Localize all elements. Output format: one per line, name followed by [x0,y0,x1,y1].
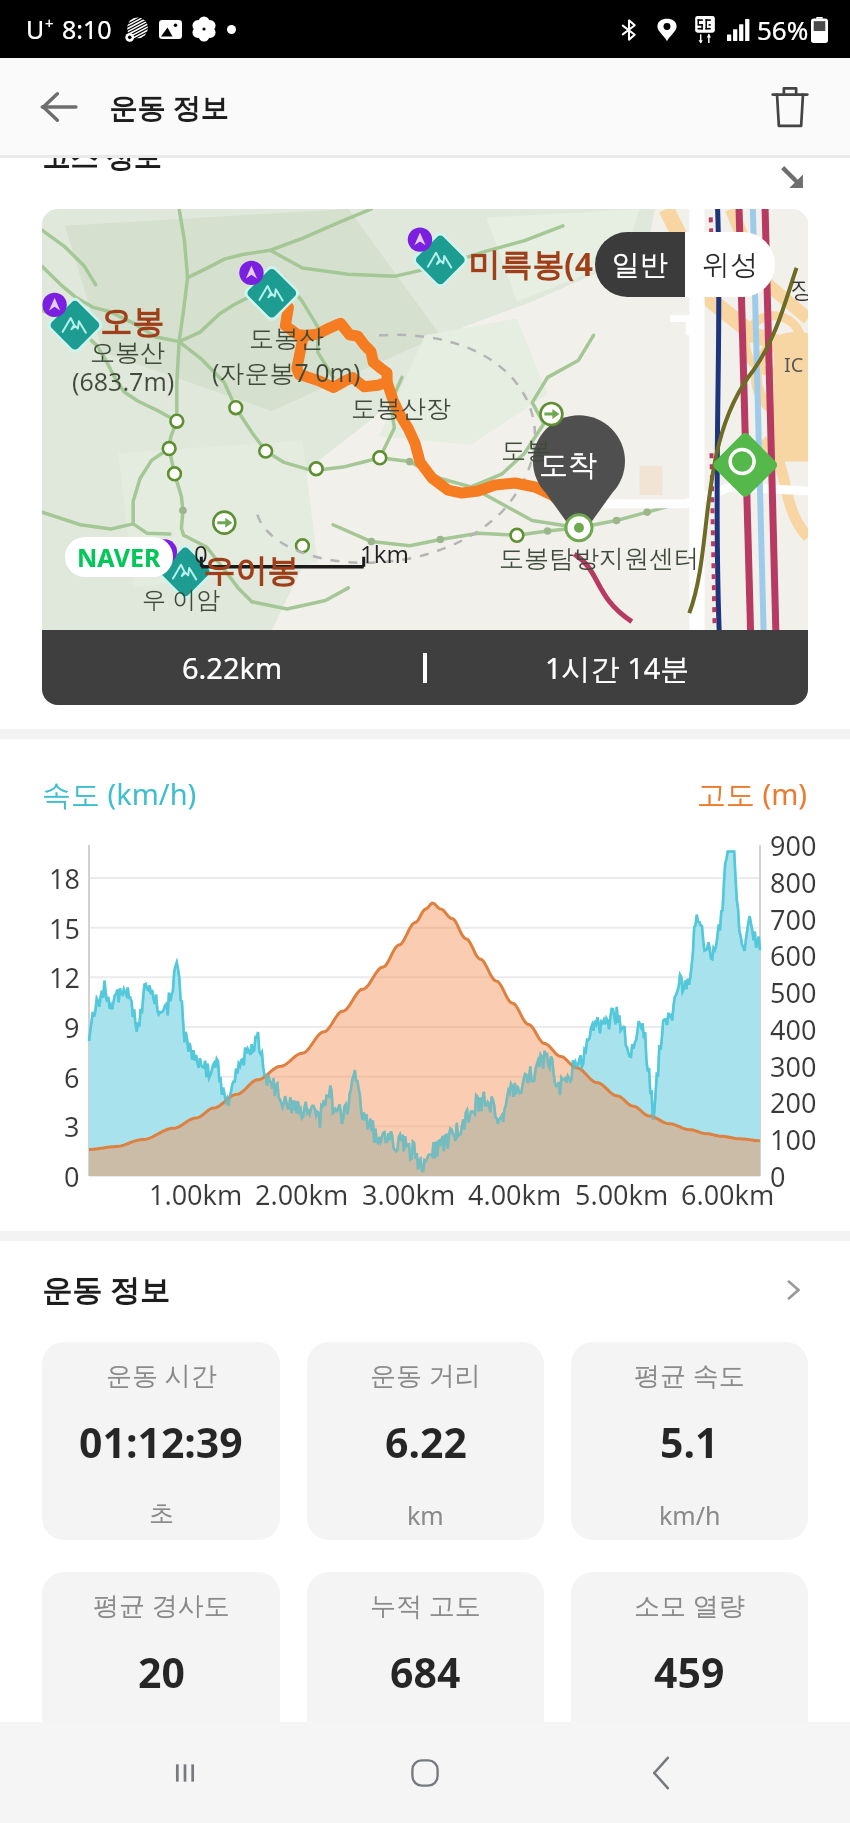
staticText: (683.7m) [72,364,175,398]
staticText: 100 [770,1121,817,1158]
staticText: 평균 경사도 [93,1587,230,1623]
button[interactable]: 일반 [595,232,685,297]
staticText: km [407,1498,444,1532]
staticText: 일반 [612,247,668,282]
staticText: 우이봉 [203,551,299,591]
staticText: 684 [390,1644,461,1700]
button[interactable]: 평균 경사도 [42,1572,280,1770]
staticText: 도봉탐방지원센터 [499,543,699,574]
staticText: 도착 [539,447,597,484]
staticText: 코스 정보 [42,158,162,175]
staticText: 15 [49,910,80,947]
staticText: 200 [770,1084,817,1121]
staticText: km/h [659,1498,721,1532]
staticText: 4.00km [468,1176,562,1213]
staticText: 18 [49,860,80,897]
staticText: 속도 (km/h) [42,774,197,814]
staticText: 도봉산 [249,323,324,354]
staticText: 459 [654,1644,725,1700]
staticText: 누적 고도 [370,1587,481,1623]
staticText: 운동 시간 [106,1357,217,1393]
staticText: 위성 [702,247,758,282]
staticText: 6.22 [385,1414,467,1470]
button[interactable]: 운동 거리 [307,1342,544,1540]
staticText: 700 [770,901,817,938]
staticText: 800 [770,864,817,901]
staticText: 0 [64,1158,80,1195]
staticText: 도봉 [501,435,551,466]
staticText: 5.1 [660,1414,719,1470]
staticText: 소모 열량 [634,1587,745,1623]
staticText: 징 [790,275,808,305]
staticText: 56% [757,12,809,47]
staticText: 0 [770,1158,786,1195]
button[interactable]: 오봉 [42,209,808,705]
staticText: 2.00km [255,1176,349,1213]
button[interactable]: 소모 열량 [571,1572,808,1770]
staticText: 6.22km [182,648,283,687]
button[interactable]: Back [28,77,88,137]
staticText: + [45,13,54,33]
button[interactable]: Delete [760,77,820,137]
staticText: 3.00km [362,1176,456,1213]
staticText: NAVER [77,540,161,574]
staticText: 01:12:39 [79,1414,243,1470]
staticText: 1km [360,537,409,570]
staticText: 900 [770,827,817,864]
staticText: 3 [64,1108,80,1145]
staticText: 12 [49,959,80,996]
staticText: 600 [770,937,817,974]
button[interactable]: 운동 정보 [0,1255,850,1324]
button[interactable]: 평균 속도 [571,1342,808,1540]
staticText: 고도 (m) [697,774,808,814]
staticText: 운동 정보 [42,1269,170,1310]
button[interactable]: 위성 [685,232,775,297]
staticText: 20 [138,1644,185,1700]
staticText: 8:10 [62,12,112,46]
staticText: 300 [770,1048,817,1085]
staticText: m [414,1728,438,1762]
staticText: IC [784,351,804,378]
staticText: 6 [64,1059,80,1096]
staticText: 0 [194,537,208,570]
button[interactable]: Recent apps [140,1722,230,1823]
staticText: 도봉산장 [351,393,451,424]
staticText: 1.00km [149,1176,243,1213]
button[interactable]: 운동 시간 [42,1342,280,1540]
staticText: 운동 거리 [370,1357,481,1393]
staticText: 5.00km [575,1176,669,1213]
staticText: 1시간 14분 [545,648,690,688]
staticText: 초 [149,1498,174,1529]
staticText: 평균 속도 [634,1357,745,1393]
staticText: 오봉 [100,302,164,342]
staticText: U [26,12,45,46]
staticText: 500 [770,974,817,1011]
staticText: 우 이암 [142,582,221,615]
staticText: kcal [667,1728,713,1762]
staticText: 9 [64,1009,80,1046]
staticText: 오봉산 [90,337,165,368]
staticText: 미륵봉(4 [468,242,594,286]
button[interactable]: Home [380,1722,470,1823]
button[interactable]: Back [615,1722,705,1823]
button[interactable]: 코스 정보 [0,158,850,209]
button[interactable]: 누적 고도 [307,1572,544,1770]
staticText: 6.00km [681,1176,775,1213]
staticText: (자운봉7 0m) [212,355,361,389]
staticText: 운동 정보 [109,88,229,126]
staticText: 400 [770,1011,817,1048]
